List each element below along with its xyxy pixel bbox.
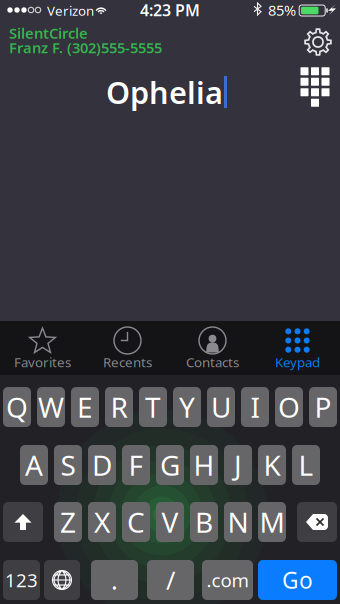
staticText: T xyxy=(145,388,161,426)
button[interactable]: L xyxy=(292,445,320,485)
button[interactable]: B xyxy=(190,502,218,542)
staticText: Y xyxy=(179,388,195,426)
staticText: Go xyxy=(282,565,313,595)
staticText: G xyxy=(160,446,180,484)
staticText: H xyxy=(193,446,214,484)
staticText: / xyxy=(166,563,175,597)
button[interactable]: Y xyxy=(173,387,201,427)
button[interactable]: W xyxy=(37,387,65,427)
staticText: I xyxy=(250,388,259,426)
button[interactable]: I xyxy=(241,387,269,427)
staticText: 123 xyxy=(5,568,38,592)
button[interactable]: U xyxy=(207,387,235,427)
staticText: D xyxy=(92,446,112,484)
staticText: U xyxy=(211,388,231,426)
staticText: 4:23 PM xyxy=(140,0,200,21)
button[interactable]: Favorites xyxy=(0,321,85,375)
button[interactable]: N xyxy=(224,502,252,542)
button[interactable]: X xyxy=(88,502,116,542)
button[interactable]: D xyxy=(88,445,116,485)
staticText: .com xyxy=(206,568,248,592)
button[interactable]: M xyxy=(258,502,286,542)
staticText: L xyxy=(298,446,313,484)
staticText: W xyxy=(38,388,64,426)
button[interactable]: / xyxy=(147,560,194,600)
button[interactable]: J xyxy=(224,445,252,485)
staticText: Favorites xyxy=(14,353,71,371)
button[interactable]: .com xyxy=(202,560,253,600)
button[interactable]: V xyxy=(156,502,184,542)
button[interactable]: G xyxy=(156,445,184,485)
staticText: E xyxy=(77,388,93,426)
staticText: Franz F. (302)555-5555 xyxy=(9,38,162,57)
button[interactable]: . xyxy=(91,560,138,600)
button[interactable] xyxy=(297,502,337,542)
button[interactable]: E xyxy=(71,387,99,427)
staticText: X xyxy=(94,503,110,541)
staticText: Contacts xyxy=(186,353,239,371)
staticText: R xyxy=(110,388,127,426)
button[interactable]: C xyxy=(122,502,150,542)
staticText: Z xyxy=(60,503,76,541)
staticText: Ophelia xyxy=(106,72,223,112)
staticText: S xyxy=(60,446,75,484)
button[interactable]: Settings xyxy=(300,26,336,58)
button[interactable]: Recents xyxy=(85,321,170,375)
staticText: A xyxy=(25,446,43,484)
staticText: Verizon xyxy=(47,2,94,19)
button[interactable]: O xyxy=(275,387,303,427)
button[interactable] xyxy=(44,560,80,600)
staticText: J xyxy=(234,446,242,484)
button[interactable]: Contacts xyxy=(170,321,255,375)
button[interactable]: Go xyxy=(258,560,337,600)
staticText: . xyxy=(111,563,118,597)
staticText: Recents xyxy=(103,353,152,371)
button[interactable]: P xyxy=(309,387,337,427)
staticText: SilentCircle xyxy=(9,23,88,43)
button[interactable]: K xyxy=(258,445,286,485)
staticText: B xyxy=(195,503,213,541)
staticText: Q xyxy=(6,388,28,426)
button[interactable]: Q xyxy=(3,387,31,427)
button[interactable]: 123 xyxy=(3,560,40,600)
staticText: N xyxy=(227,503,248,541)
staticText: F xyxy=(128,446,143,484)
button[interactable]: T xyxy=(139,387,167,427)
staticText: K xyxy=(263,446,280,484)
button[interactable]: Z xyxy=(54,502,82,542)
staticText: O xyxy=(278,388,300,426)
button[interactable] xyxy=(3,502,43,542)
staticText: V xyxy=(161,503,178,541)
button[interactable]: A xyxy=(20,445,48,485)
staticText: C xyxy=(127,503,145,541)
button[interactable]: S xyxy=(54,445,82,485)
button[interactable]: F xyxy=(122,445,150,485)
button[interactable]: R xyxy=(105,387,133,427)
button[interactable]: Keypad xyxy=(255,321,340,375)
staticText: P xyxy=(314,388,331,426)
staticText: M xyxy=(259,503,284,541)
button[interactable]: H xyxy=(190,445,218,485)
staticText: Keypad xyxy=(275,353,320,371)
staticText: 85% xyxy=(268,0,296,20)
button[interactable]: Show keypad xyxy=(296,65,334,109)
